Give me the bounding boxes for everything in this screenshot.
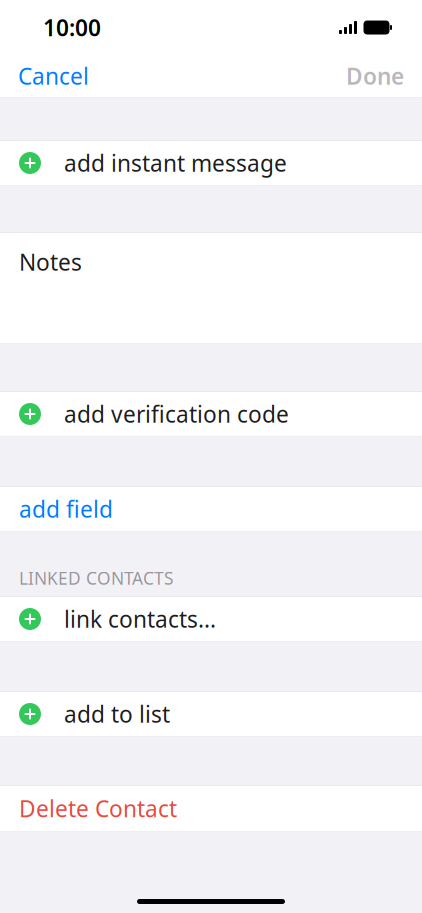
button[interactable]: Done <box>334 55 422 97</box>
staticText: Cancel <box>18 61 89 91</box>
button[interactable]: Cancel <box>0 55 101 97</box>
staticText: 10:00 <box>43 12 101 42</box>
button[interactable]: Delete Contact <box>0 786 422 831</box>
staticText: LINKED CONTACTS <box>19 566 174 589</box>
staticText: add instant message <box>64 148 287 178</box>
button[interactable]: add to list <box>0 692 422 736</box>
staticText: add field <box>19 494 113 524</box>
staticText: add to list <box>64 699 170 729</box>
button[interactable]: add field <box>0 487 422 531</box>
button[interactable]: add verification code <box>0 392 422 436</box>
staticText: add verification code <box>64 399 289 429</box>
staticText: Done <box>346 61 404 91</box>
button[interactable]: link contacts... <box>0 597 422 641</box>
staticText: Notes <box>19 247 82 277</box>
button[interactable]: add instant message <box>0 141 422 185</box>
staticText: link contacts... <box>64 604 216 634</box>
staticText: Delete Contact <box>19 793 177 823</box>
